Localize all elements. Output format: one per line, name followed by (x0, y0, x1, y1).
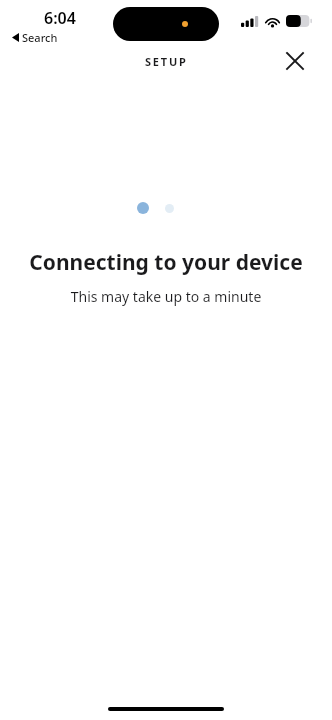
staticText: Search (22, 30, 58, 45)
staticText: 6:04 (44, 7, 76, 29)
staticText: Connecting to your device (0, 248, 332, 277)
button[interactable]: Close (280, 46, 310, 76)
staticText: This may take up to a minute (0, 287, 332, 306)
staticText: SETUP (145, 54, 188, 69)
button[interactable]: SETUP (137, 50, 196, 73)
